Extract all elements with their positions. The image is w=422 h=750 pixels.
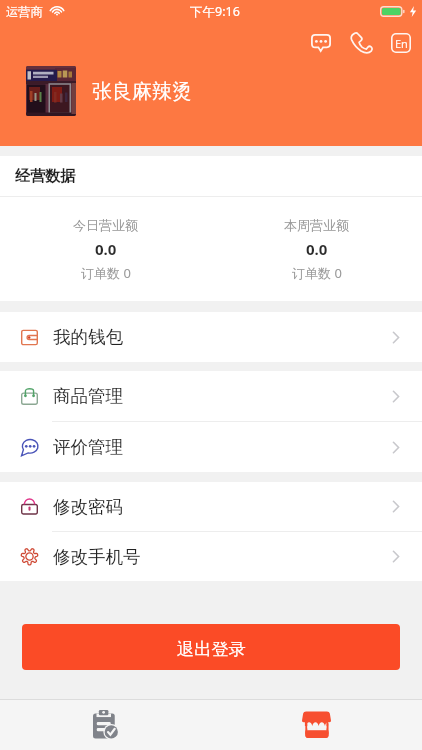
button[interactable]: Shop [211, 700, 422, 750]
button[interactable]: Messages [306, 28, 336, 58]
staticText: 我的钱包 [53, 326, 123, 348]
staticText: 今日营业额 [73, 217, 138, 233]
staticText: En [395, 36, 408, 51]
button[interactable]: Language [386, 28, 416, 58]
button[interactable]: 商品管理 [0, 371, 422, 421]
staticText: 修改密码 [53, 496, 123, 518]
staticText: 评价管理 [53, 436, 123, 458]
staticText: 下午9:16 [190, 3, 240, 20]
button[interactable]: 退出登录 [22, 624, 400, 670]
staticText: 退出登录 [177, 638, 246, 660]
button[interactable]: 评价管理 [0, 422, 422, 472]
button[interactable]: Orders [0, 700, 211, 750]
staticText: 0.0 [306, 239, 328, 259]
staticText: 张良麻辣烫 [92, 79, 192, 104]
staticText: 商品管理 [53, 385, 123, 407]
staticText: 本周营业额 [284, 217, 349, 233]
staticText: 运营商 [6, 4, 43, 19]
staticText: 订单数 0 [292, 264, 342, 282]
button[interactable]: 我的钱包 [0, 312, 422, 362]
button[interactable]: Call [346, 28, 376, 58]
staticText: 经营数据 [15, 167, 75, 186]
button[interactable]: 修改手机号 [0, 532, 422, 581]
staticText: 订单数 0 [81, 264, 131, 282]
button[interactable]: 修改密码 [0, 482, 422, 531]
staticText: 0.0 [95, 239, 117, 259]
staticText: 修改手机号 [53, 546, 141, 568]
